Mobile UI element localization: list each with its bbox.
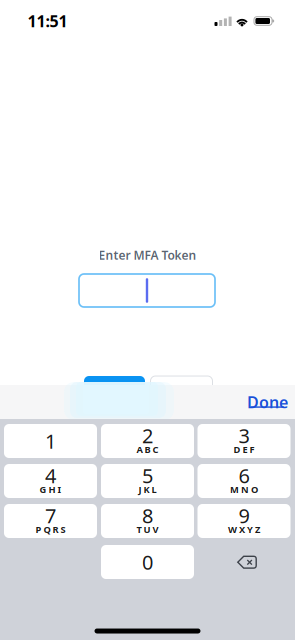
button[interactable]: Delete bbox=[200, 545, 293, 579]
staticText: 9 bbox=[238, 502, 249, 529]
staticText: 0 bbox=[142, 549, 153, 575]
staticText: W X Y Z bbox=[228, 523, 260, 536]
staticText: T U V bbox=[136, 523, 158, 536]
button[interactable]: Done bbox=[242, 393, 292, 411]
staticText: 4 bbox=[45, 462, 56, 489]
button[interactable]: Cancel bbox=[150, 376, 212, 404]
staticText: 3 bbox=[238, 422, 249, 449]
button[interactable]: 5 bbox=[101, 464, 194, 498]
staticText: 1 bbox=[45, 428, 56, 454]
button[interactable]: 3 bbox=[197, 424, 290, 458]
button[interactable]: 8 bbox=[101, 504, 194, 538]
staticText: 8 bbox=[142, 502, 153, 529]
staticText: 5 bbox=[142, 462, 153, 489]
staticText: Done bbox=[247, 391, 288, 413]
staticText: D E F bbox=[233, 443, 254, 456]
staticText: 2 bbox=[142, 422, 153, 449]
staticText: G H I bbox=[39, 483, 61, 496]
button[interactable]: 4 bbox=[4, 464, 97, 498]
staticText: 11:51 bbox=[27, 10, 67, 32]
button[interactable]: 0 bbox=[101, 545, 194, 579]
button[interactable]: 1 bbox=[4, 424, 97, 458]
staticText: Enter MFA Token bbox=[98, 247, 196, 263]
staticText: Cancel bbox=[156, 387, 206, 409]
staticText: 6 bbox=[238, 462, 249, 489]
button[interactable]: Verify bbox=[84, 376, 145, 404]
button[interactable]: 9 bbox=[197, 504, 290, 538]
button[interactable]: 2 bbox=[101, 424, 194, 458]
staticText: 7 bbox=[45, 502, 56, 529]
staticText: P Q R S bbox=[35, 523, 65, 536]
button[interactable]: 7 bbox=[4, 504, 97, 538]
staticText: J K L bbox=[138, 483, 156, 496]
staticText: A B C bbox=[136, 443, 158, 456]
staticText: M N O bbox=[230, 483, 258, 496]
button[interactable]: 6 bbox=[197, 464, 290, 498]
